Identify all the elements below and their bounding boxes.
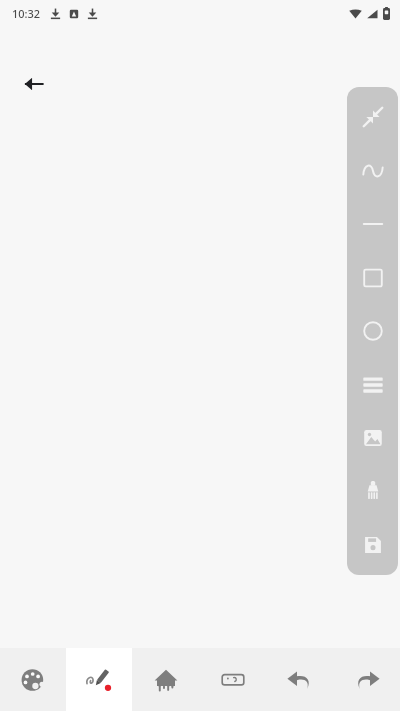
button[interactable]: Image xyxy=(350,415,396,461)
button[interactable]: Curve xyxy=(350,148,396,194)
button[interactable]: Clean xyxy=(350,468,396,514)
button[interactable]: Palette xyxy=(0,648,66,711)
button[interactable]: Redo xyxy=(333,648,400,711)
button[interactable]: Layers xyxy=(350,361,396,407)
button[interactable]: Back xyxy=(12,62,56,106)
button[interactable]: Undo xyxy=(266,648,333,711)
button[interactable]: Pen xyxy=(66,648,132,711)
button[interactable]: Line xyxy=(350,201,396,247)
button[interactable]: Rectangle xyxy=(350,255,396,301)
staticText: 10:32 xyxy=(12,6,41,21)
button[interactable]: Save xyxy=(350,522,396,568)
button[interactable]: Collapse xyxy=(350,94,396,140)
button[interactable]: Circle xyxy=(350,308,396,354)
button[interactable]: Stamp xyxy=(132,648,199,711)
button[interactable]: Eraser xyxy=(199,648,266,711)
